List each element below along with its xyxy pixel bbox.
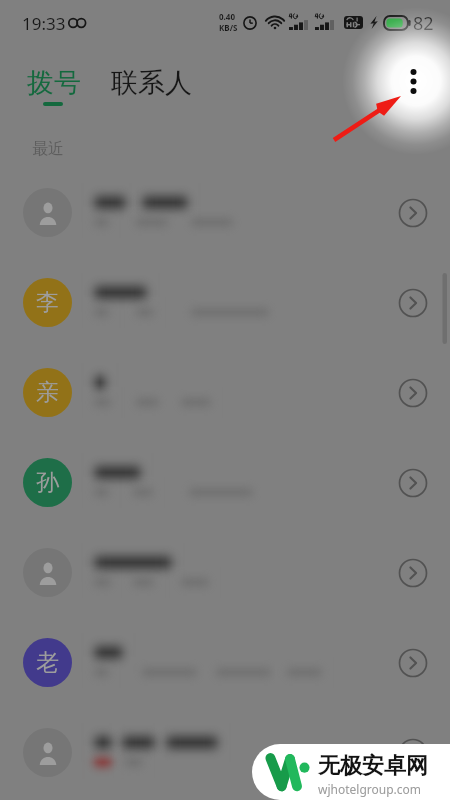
button[interactable]: Open details [398, 738, 428, 768]
button[interactable]: 亲 [0, 348, 450, 438]
staticText: 亲 [36, 378, 59, 407]
button[interactable]: 李 [0, 258, 450, 348]
button[interactable]: Open details [398, 198, 428, 228]
button[interactable]: Open details [0, 168, 450, 258]
staticText: 0.40 [219, 11, 235, 22]
button[interactable]: 联系人 [111, 66, 192, 100]
staticText: 拨号 [27, 66, 81, 100]
button[interactable]: Open details [398, 648, 428, 678]
staticText: wjhotelgroup.com [318, 781, 422, 797]
button[interactable]: 孙 [0, 438, 450, 528]
button[interactable]: 老 [0, 618, 450, 708]
button[interactable]: Open details [398, 558, 428, 588]
button[interactable]: Open details [398, 468, 428, 498]
staticText: KB/S [219, 22, 238, 33]
staticText: 老 [36, 648, 59, 677]
staticText: 孙 [36, 468, 59, 497]
staticText: 李 [36, 288, 59, 317]
button[interactable]: Open details [0, 528, 450, 618]
button[interactable]: Open details [398, 288, 428, 318]
button[interactable]: Open details [398, 378, 428, 408]
button[interactable]: 拨号 [27, 66, 81, 100]
staticText: 无极安卓网 [318, 752, 428, 780]
staticText: 19:33 [22, 12, 66, 35]
staticText: 联系人 [111, 66, 192, 100]
button[interactable]: More options [392, 58, 436, 102]
staticText: 最近 [32, 139, 64, 159]
staticText: 82 [413, 11, 434, 36]
button[interactable]: Open details [0, 708, 450, 798]
